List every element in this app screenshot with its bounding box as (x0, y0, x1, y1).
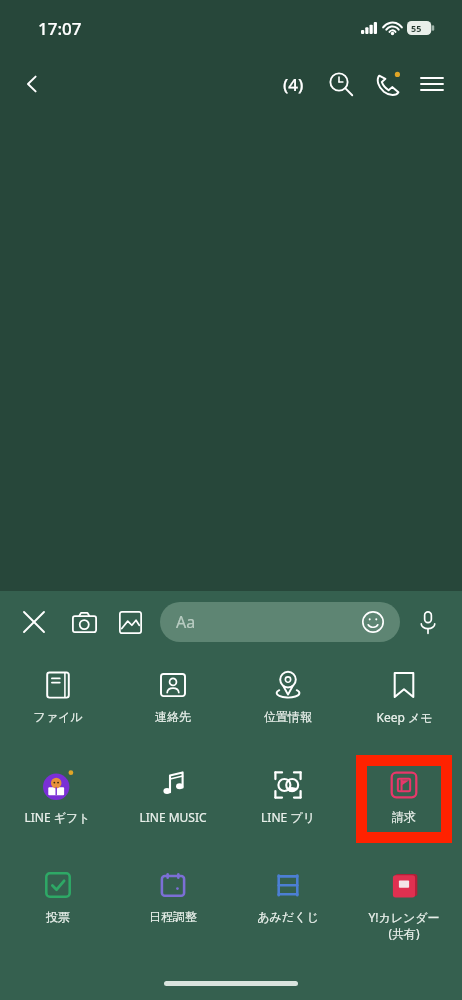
button[interactable]: 位置情報 (230, 653, 346, 753)
staticText: 連絡先 (155, 709, 191, 724)
staticText: 55 (411, 22, 422, 34)
button[interactable]: Close (14, 602, 54, 642)
staticText: Keep メモ (376, 709, 433, 725)
staticText: ファイル (33, 709, 83, 724)
button[interactable]: Photos (110, 602, 150, 642)
staticText: あみだくじ (257, 909, 319, 924)
button[interactable]: Keep メモ (346, 653, 462, 753)
button[interactable]: Y!カレンダー (共有) (346, 853, 462, 953)
staticText: Aa (176, 611, 196, 633)
button[interactable]: Call (366, 63, 408, 105)
staticText: (4) (283, 73, 304, 96)
button[interactable]: Back (10, 62, 54, 106)
staticText: 投票 (46, 909, 70, 924)
button[interactable]: Voice message (408, 602, 448, 642)
button[interactable]: LINE ギフト (0, 753, 115, 853)
button[interactable]: あみだくじ (230, 853, 346, 953)
staticText: LINE プリ (261, 809, 315, 825)
button[interactable]: ファイル (0, 653, 115, 753)
staticText: Y!カレンダー (共有) (368, 909, 440, 941)
button[interactable]: Search (320, 63, 362, 105)
staticText: 17:07 (38, 17, 82, 40)
button[interactable]: Menu (410, 62, 454, 106)
button[interactable]: (4) (279, 65, 308, 104)
button[interactable]: 請求 (346, 753, 462, 853)
other: Emoji (362, 611, 384, 633)
button[interactable]: Aa (160, 602, 400, 642)
button[interactable]: LINE プリ (230, 753, 346, 853)
button[interactable]: 日程調整 (115, 853, 230, 953)
staticText: 位置情報 (264, 709, 312, 724)
staticText: LINE ギフト (24, 809, 91, 825)
staticText: 請求 (392, 809, 416, 824)
staticText: LINE MUSIC (139, 809, 207, 825)
button[interactable]: Camera (64, 602, 104, 642)
button[interactable]: 投票 (0, 853, 115, 953)
button[interactable]: 連絡先 (115, 653, 230, 753)
button[interactable]: LINE MUSIC (115, 753, 230, 853)
staticText: 日程調整 (149, 909, 197, 924)
